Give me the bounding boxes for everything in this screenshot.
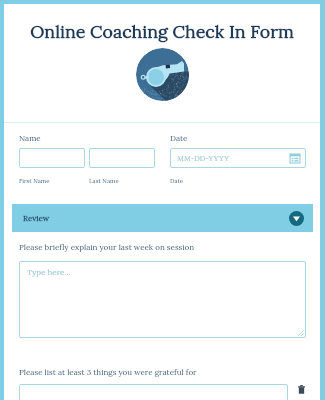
other: Collapse Review section bbox=[289, 211, 304, 226]
staticText: Please briefly explain your last week on… bbox=[19, 242, 195, 252]
button[interactable]: Review bbox=[12, 204, 313, 232]
button[interactable]: Type here... bbox=[19, 261, 306, 338]
staticText: Please list at least 3 things you were g… bbox=[19, 367, 197, 377]
staticText: Name bbox=[19, 133, 41, 143]
button[interactable]: MM-DD-YYYY bbox=[170, 148, 306, 168]
button[interactable]: Delete bbox=[292, 378, 310, 400]
staticText: First Name bbox=[19, 177, 50, 185]
staticText: Online Coaching Check In Form bbox=[30, 20, 294, 43]
staticText: Review bbox=[23, 213, 50, 223]
staticText: Date bbox=[170, 177, 184, 185]
button[interactable] bbox=[19, 384, 288, 400]
staticText: Type here... bbox=[27, 267, 71, 277]
staticText: Last Name bbox=[89, 177, 119, 185]
button[interactable] bbox=[89, 148, 155, 168]
button[interactable] bbox=[19, 148, 85, 168]
staticText: Date bbox=[170, 133, 188, 143]
staticText: MM-DD-YYYY bbox=[177, 153, 229, 163]
